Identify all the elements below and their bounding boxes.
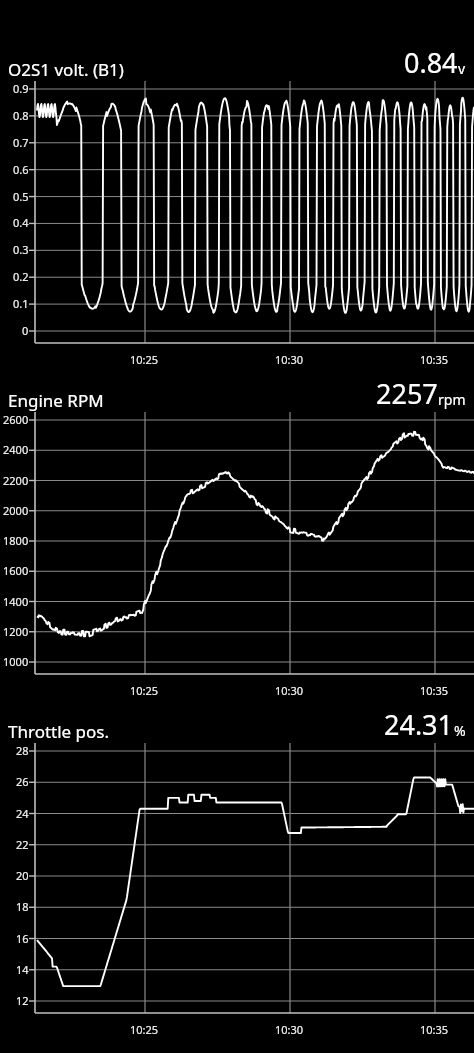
- staticText: 22: [16, 837, 29, 852]
- staticText: 1200: [3, 624, 29, 639]
- staticText: 0.9: [13, 81, 29, 96]
- staticText: 24: [16, 806, 29, 821]
- staticText: 2200: [3, 473, 29, 488]
- button[interactable]: O2S1 volt. (B1): [0, 44, 474, 369]
- staticText: 16: [16, 931, 29, 946]
- staticText: 20: [16, 868, 29, 883]
- staticText: Throttle pos.: [8, 720, 384, 743]
- staticText: 0.6: [13, 162, 29, 177]
- staticText: 1000: [3, 654, 29, 669]
- staticText: 10:35: [420, 683, 449, 698]
- staticText: 1600: [3, 563, 29, 578]
- staticText: 0: [22, 323, 29, 338]
- staticText: 26: [16, 774, 29, 789]
- staticText: 24.31: [384, 706, 454, 743]
- staticText: 10:30: [275, 1022, 304, 1037]
- staticText: 1800: [3, 533, 29, 548]
- staticText: 0.3: [13, 242, 29, 257]
- staticText: 10:25: [130, 1022, 159, 1037]
- staticText: 14: [16, 962, 29, 977]
- staticText: 0.84: [404, 44, 458, 81]
- staticText: 10:25: [130, 683, 159, 698]
- staticText: rpm: [438, 390, 466, 409]
- button[interactable]: Engine RPM: [0, 375, 474, 700]
- staticText: 0.7: [13, 135, 29, 150]
- staticText: 18: [16, 899, 29, 914]
- staticText: 28: [16, 743, 29, 758]
- staticText: 1400: [3, 594, 29, 609]
- staticText: 10:35: [420, 1022, 449, 1037]
- staticText: 0.2: [13, 269, 29, 284]
- staticText: 0.8: [13, 108, 29, 123]
- staticText: 2400: [3, 442, 29, 457]
- staticText: 2600: [3, 412, 29, 427]
- staticText: %: [454, 721, 466, 740]
- staticText: 0.1: [13, 296, 29, 311]
- staticText: O2S1 volt. (B1): [8, 58, 404, 81]
- staticText: 2000: [3, 503, 29, 518]
- staticText: v: [458, 59, 466, 78]
- staticText: 12: [16, 993, 29, 1008]
- staticText: 10:35: [420, 352, 449, 367]
- staticText: 10:25: [130, 352, 159, 367]
- staticText: 10:30: [275, 352, 304, 367]
- button[interactable]: Throttle pos.: [0, 706, 474, 1039]
- staticText: 2257: [376, 375, 438, 412]
- staticText: 10:30: [275, 683, 304, 698]
- staticText: Engine RPM: [8, 389, 376, 412]
- staticText: 0.5: [13, 189, 29, 204]
- staticText: 0.4: [13, 215, 29, 230]
